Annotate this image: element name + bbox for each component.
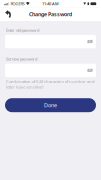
staticText: Done [44, 102, 57, 109]
staticText: Enter old password [6, 27, 39, 33]
staticText: 11:40 AM [42, 1, 59, 6]
button[interactable]: Back [2, 9, 15, 20]
staticText: Change Password [29, 11, 72, 18]
staticText: Combination of 6-32 characters of number… [6, 79, 95, 84]
staticText: Set new password [6, 56, 37, 62]
staticText: ROGERS [10, 1, 24, 6]
button[interactable]: Done [5, 98, 96, 112]
staticText: letter (case sensitive) [6, 84, 43, 90]
